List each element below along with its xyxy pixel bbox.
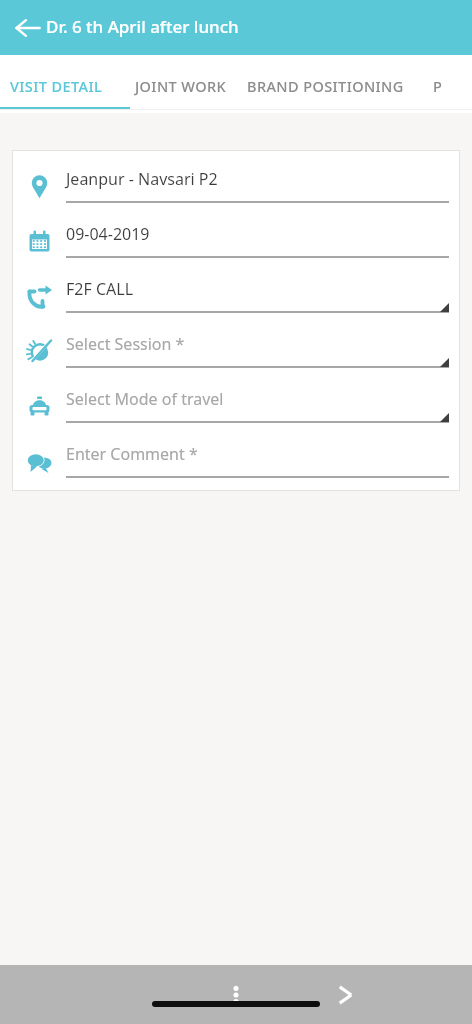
staticText: 09-04-2019 [66,223,150,245]
button[interactable]: JOINT WORK [120,55,233,110]
button[interactable]: BRAND POSITIONING [233,55,421,110]
staticText: Select Session * [66,333,185,355]
staticText: F2F CALL [66,278,134,300]
button[interactable]: More options [214,965,258,1024]
button[interactable]: Back [6,6,50,50]
button[interactable]: P [421,55,461,110]
staticText: P [433,76,443,96]
staticText: Enter Comment * [66,443,198,465]
staticText: JOINT WORK [135,76,227,96]
staticText: Select Mode of travel [66,388,224,410]
button[interactable]: Select Mode of travel [12,384,460,428]
button[interactable]: F2F CALL [12,274,460,318]
staticText: BRAND POSITIONING [247,76,404,96]
button[interactable]: Select Session * [12,329,460,373]
button[interactable]: Jeanpur - Navsari P2 [12,164,460,208]
staticText: Dr. 6 th April after lunch [46,15,239,38]
button[interactable]: Forward [323,965,367,1024]
button[interactable]: VISIT DETAIL [0,55,120,110]
staticText: Jeanpur - Navsari P2 [66,168,218,190]
staticText: VISIT DETAIL [10,76,103,96]
button[interactable]: 09-04-2019 [12,219,460,263]
button[interactable]: Enter Comment * [12,439,460,483]
